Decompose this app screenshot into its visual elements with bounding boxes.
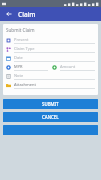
button[interactable]: Date bbox=[6, 54, 95, 63]
staticText: Note bbox=[14, 73, 24, 78]
button[interactable]: Back bbox=[4, 9, 14, 19]
staticText: Date bbox=[14, 55, 23, 60]
staticText: MYR bbox=[14, 64, 23, 69]
staticText: Amount bbox=[60, 64, 76, 69]
staticText: Claim Type bbox=[14, 46, 35, 51]
button[interactable]: Present bbox=[6, 36, 95, 45]
staticText: Submit Claim bbox=[6, 27, 35, 33]
button[interactable]: MYR bbox=[6, 64, 48, 71]
staticText: CANCEL bbox=[42, 114, 59, 120]
staticText: Attachment bbox=[14, 82, 36, 87]
button[interactable]: SUBMIT bbox=[3, 99, 98, 109]
staticText: SUBMIT bbox=[42, 101, 59, 107]
button[interactable]: Note bbox=[6, 72, 95, 81]
button[interactable]: Claim Type bbox=[6, 45, 95, 54]
button[interactable]: Amount bbox=[52, 64, 95, 71]
staticText: Claim bbox=[18, 10, 36, 19]
button[interactable]: Attachment bbox=[6, 81, 95, 90]
button[interactable]: CANCEL bbox=[3, 112, 98, 122]
staticText: Present bbox=[14, 37, 29, 42]
